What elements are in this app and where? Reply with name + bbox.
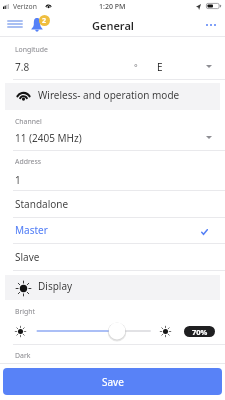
button[interactable]: Direction <box>200 57 218 75</box>
button[interactable]: Save <box>3 368 222 395</box>
staticText: Dark <box>15 351 31 360</box>
staticText: 7.8 <box>15 60 30 74</box>
staticText: Wireless- and operation mode <box>38 88 180 102</box>
button[interactable]: Standalone <box>0 191 225 218</box>
staticText: ° <box>134 62 138 74</box>
staticText: Master <box>15 223 48 237</box>
staticText: E <box>157 60 163 74</box>
staticText: Verizon <box>13 2 37 11</box>
staticText: Standalone <box>15 197 69 211</box>
button[interactable]: More options <box>200 14 222 36</box>
staticText: Slave <box>15 250 40 264</box>
button[interactable]: Channel <box>200 128 218 146</box>
staticText: 70% <box>192 327 208 337</box>
staticText: Longitude <box>15 45 48 54</box>
staticText: Bright <box>15 307 36 316</box>
staticText: 1:20 PM <box>99 2 126 12</box>
button[interactable]: Notifications <box>29 13 51 35</box>
staticText: Display <box>38 279 73 293</box>
staticText: Save <box>102 375 124 389</box>
button[interactable]: Master <box>0 217 225 244</box>
button[interactable]: Menu <box>4 14 26 34</box>
staticText: Channel <box>15 117 42 126</box>
staticText: Address <box>15 157 42 166</box>
staticText: 1 <box>15 173 21 187</box>
staticText: 2 <box>42 16 47 26</box>
staticText: General <box>92 18 134 33</box>
button[interactable]: 70% <box>184 326 215 337</box>
staticText: 11 (2405 MHz) <box>15 131 82 145</box>
button[interactable]: Slave <box>0 244 225 271</box>
